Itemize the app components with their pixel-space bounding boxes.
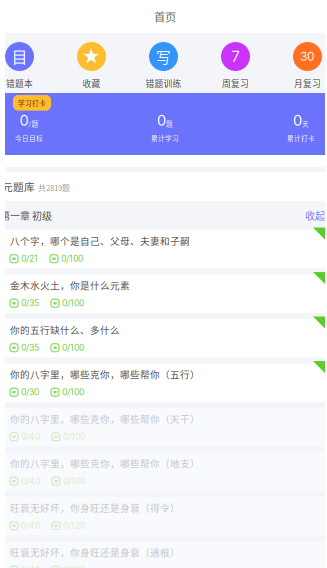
button[interactable]: 旺衰无好坏，你身旺还是身衰（通根）: [5, 541, 325, 568]
staticText: 你的八字里，哪些克你，哪些帮你（地支）: [10, 456, 200, 470]
staticText: 0/40: [21, 431, 40, 442]
staticText: 0/30: [21, 387, 39, 397]
staticText: 0/40: [21, 476, 40, 486]
staticText: 累计打卡: [287, 133, 315, 143]
staticText: 0/120: [63, 565, 85, 568]
button[interactable]: 你的八字里，哪些克你，哪些帮你（天干）: [5, 408, 325, 446]
staticText: 0/100: [61, 253, 83, 264]
staticText: 0/120: [63, 520, 85, 531]
staticText: 错题本: [6, 77, 33, 89]
staticText: 收起: [305, 208, 325, 223]
button[interactable]: 你的八字里，哪些克你，哪些帮你（地支）: [5, 452, 325, 491]
staticText: 0: [293, 112, 302, 129]
staticText: 你的五行缺什么、多什么: [10, 323, 120, 336]
button[interactable]: ★: [69, 42, 113, 89]
staticText: 首页: [154, 8, 176, 25]
button[interactable]: 收起: [305, 208, 327, 223]
button[interactable]: 目: [0, 42, 41, 89]
staticText: 旺衰无好坏，你身旺还是身衰（得令）: [10, 501, 180, 514]
staticText: 第一章 初级: [0, 208, 52, 223]
staticText: 7: [231, 48, 239, 65]
staticText: 0/21: [21, 253, 38, 264]
staticText: 0/100: [62, 387, 84, 397]
staticText: 目: [11, 45, 27, 68]
staticText: 单元题库: [0, 179, 35, 194]
staticText: 0/40: [21, 565, 40, 568]
staticText: 0: [157, 112, 166, 129]
staticText: 0/100: [62, 298, 84, 308]
staticText: ★: [81, 45, 101, 68]
staticText: 你的八字里，哪些克你，哪些帮你（天干）: [10, 412, 200, 425]
staticText: 0: [19, 112, 28, 129]
staticText: 0/100: [63, 476, 85, 486]
staticText: 共2819题: [38, 182, 70, 193]
button[interactable]: 你的五行缺什么、多什么: [5, 319, 325, 357]
staticText: 天: [302, 119, 309, 128]
staticText: 周复习: [222, 77, 249, 89]
staticText: 累计学习: [151, 133, 179, 143]
staticText: 0/40: [21, 520, 40, 531]
button[interactable]: 7: [213, 42, 257, 89]
staticText: 0/35: [21, 342, 39, 353]
staticText: 八个字，哪个是自己、父母、夫妻和子嗣: [10, 234, 190, 247]
staticText: 金木水火土，你是什么元素: [10, 278, 130, 292]
staticText: 你的八字里，哪些克你，哪些帮你（五行）: [10, 367, 200, 381]
staticText: 0/35: [21, 298, 39, 308]
staticText: 月复习: [294, 77, 321, 89]
staticText: /题: [28, 119, 38, 128]
button[interactable]: 金木水火土，你是什么元素: [5, 274, 325, 313]
button[interactable]: 旺衰无好坏，你身旺还是身衰（得令）: [5, 497, 325, 535]
staticText: 题: [166, 119, 173, 128]
staticText: 学习打卡: [18, 98, 46, 108]
staticText: 0/100: [63, 431, 85, 442]
staticText: 0/100: [62, 342, 84, 353]
staticText: 收藏: [82, 77, 100, 89]
staticText: 旺衰无好坏，你身旺还是身衰（通根）: [10, 545, 180, 559]
staticText: 30: [300, 49, 315, 64]
staticText: 错题训练: [145, 77, 181, 89]
staticText: 今日目标: [15, 133, 43, 143]
staticText: 写: [156, 46, 171, 67]
button[interactable]: 八个字，哪个是自己、父母、夫妻和子嗣: [5, 230, 325, 268]
button[interactable]: 30: [285, 42, 327, 89]
button[interactable]: 你的八字里，哪些克你，哪些帮你（五行）: [5, 363, 325, 402]
button[interactable]: 写: [141, 42, 185, 89]
